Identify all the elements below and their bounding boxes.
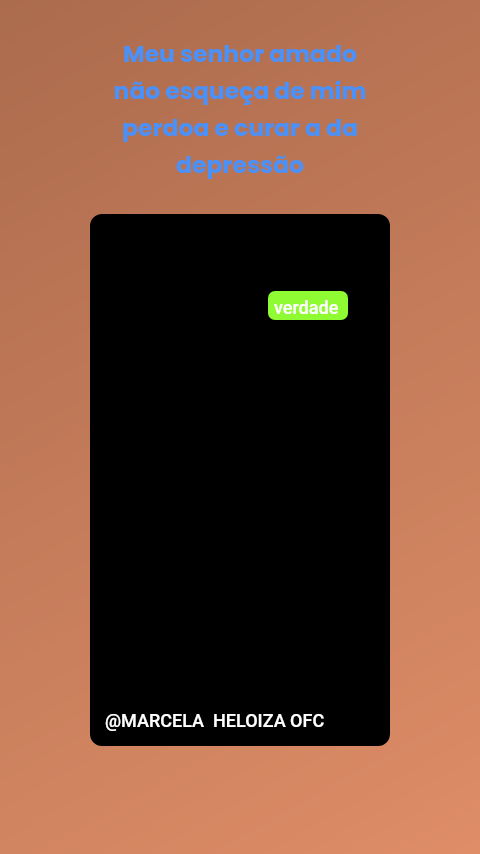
button[interactable]: Video preview: [90, 214, 390, 746]
button[interactable]: Meu senhor amado não esqueça de mim perd…: [0, 37, 480, 181]
button[interactable]: @MARCELA HELOIZA OFC: [105, 710, 325, 731]
button[interactable]: verdade: [268, 291, 348, 320]
staticText: verdade: [274, 297, 339, 318]
